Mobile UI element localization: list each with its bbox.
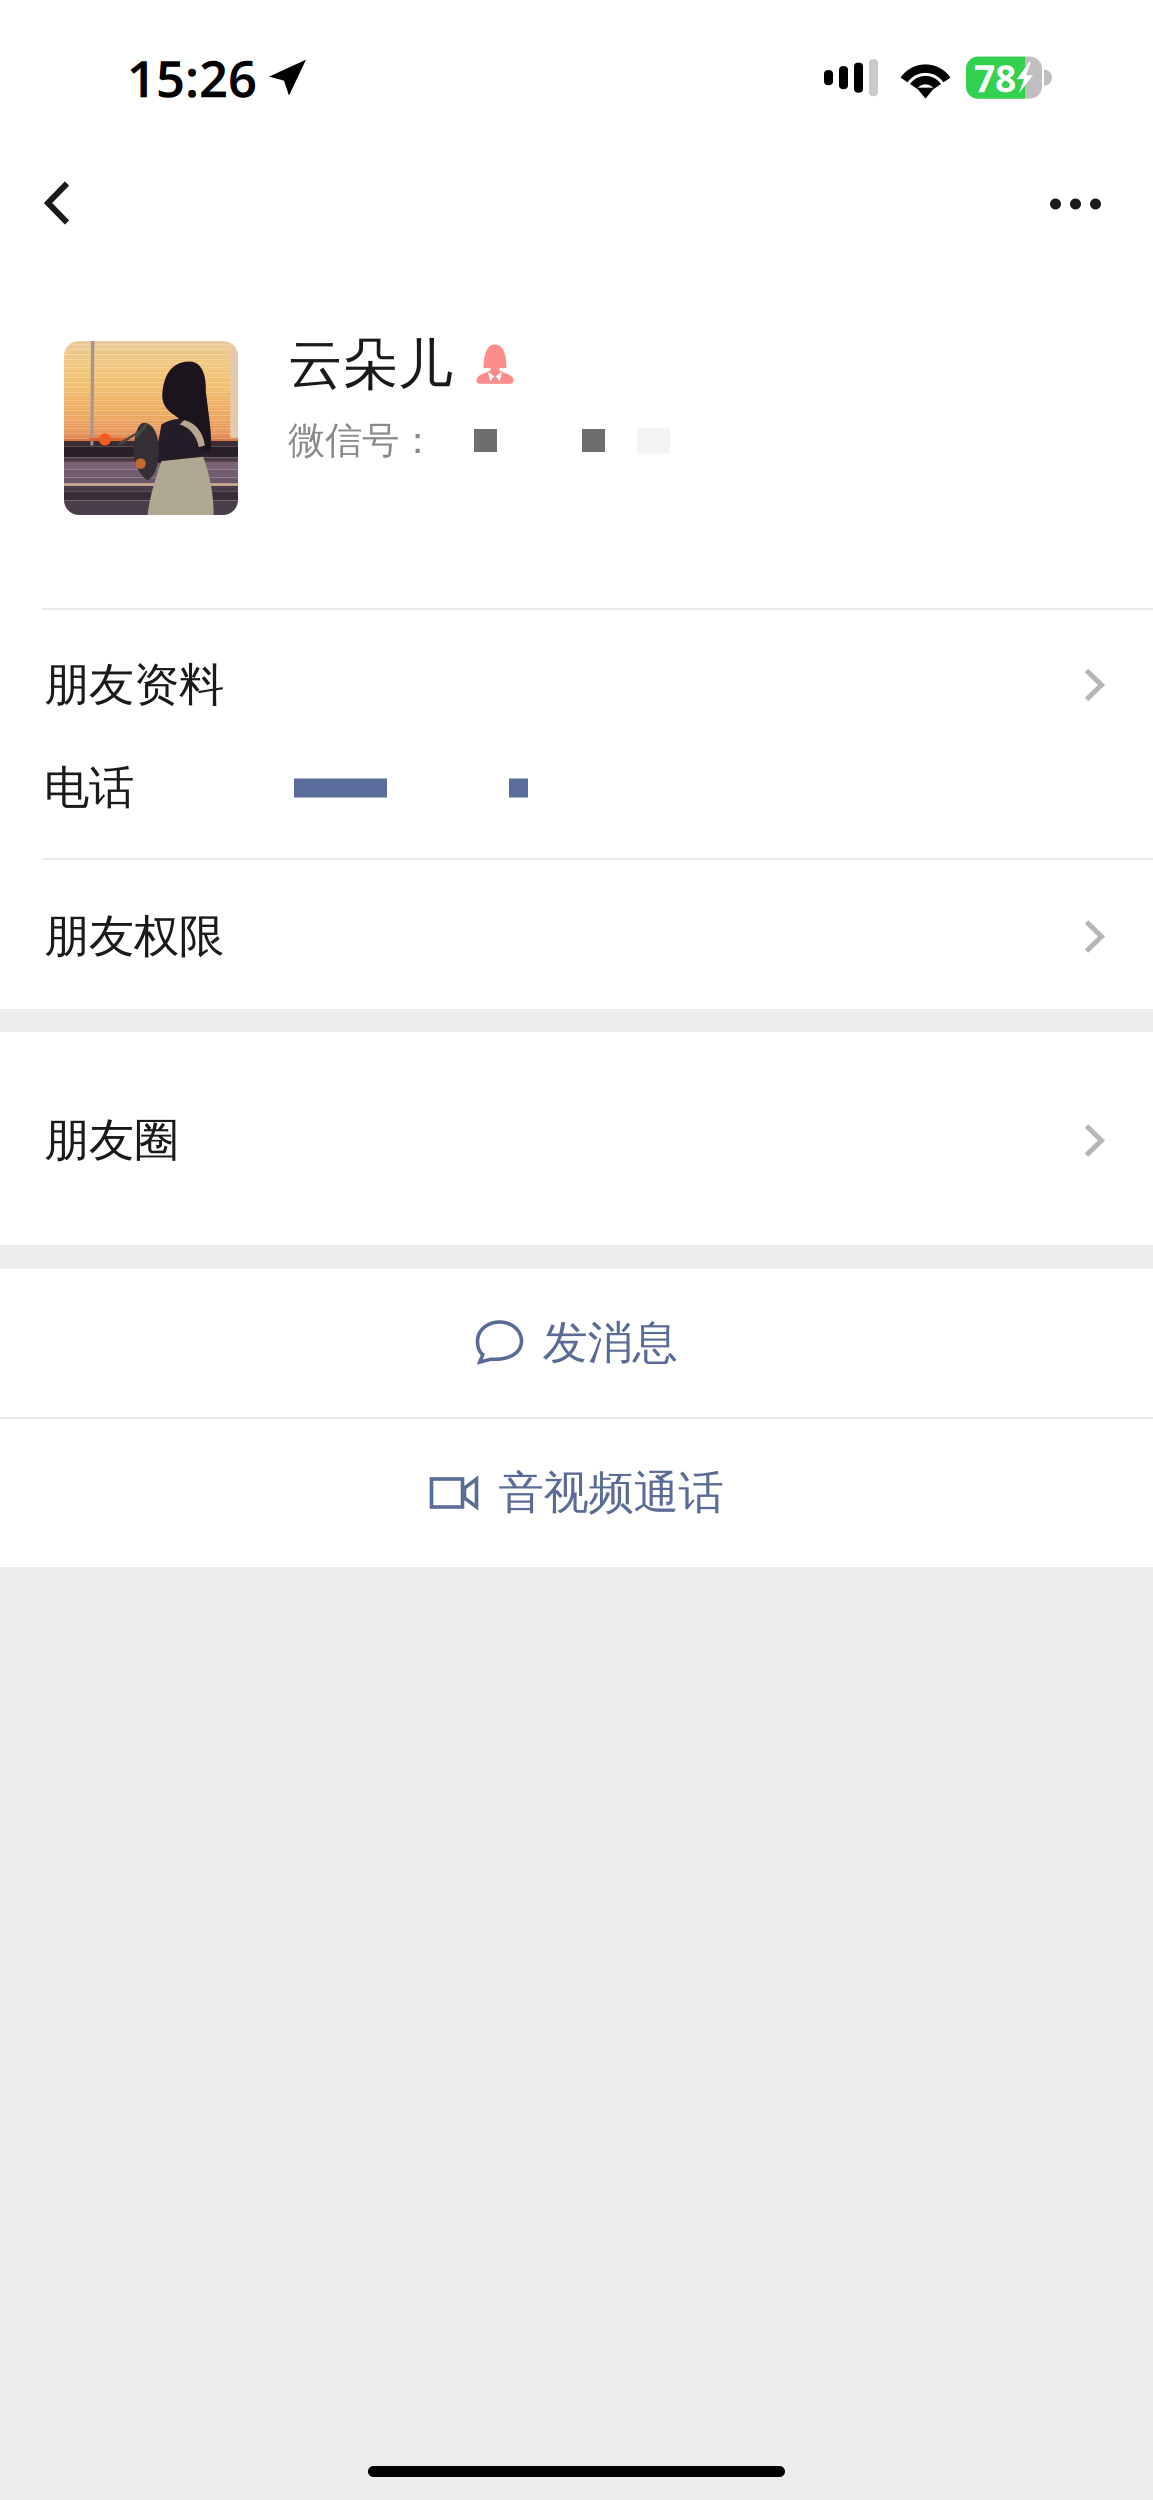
button[interactable]: 音视频通话 [0, 1419, 1153, 1567]
button[interactable]: 朋友圈 [0, 1032, 1153, 1245]
staticText: 发消息 [542, 1315, 677, 1371]
staticText: 78 [974, 53, 1016, 102]
button[interactable]: More [1010, 130, 1153, 270]
staticText: 音视频通话 [498, 1465, 723, 1521]
button[interactable]: Back [0, 130, 110, 270]
staticText: 朋友资料 [44, 657, 224, 713]
staticText: 15:26 [127, 44, 257, 111]
button[interactable]: 发消息 [0, 1269, 1153, 1417]
button[interactable]: 朋友权限 [0, 860, 1153, 1009]
staticText: 微信号： [288, 418, 436, 463]
staticText: 朋友权限 [44, 909, 224, 964]
staticText: 朋友圈 [44, 1113, 179, 1168]
button[interactable]: 朋友资料 [0, 610, 1153, 858]
staticText: 电话 [44, 760, 134, 816]
button[interactable]: 云朵儿 [0, 270, 1153, 608]
staticText: 云朵儿 [288, 331, 453, 398]
